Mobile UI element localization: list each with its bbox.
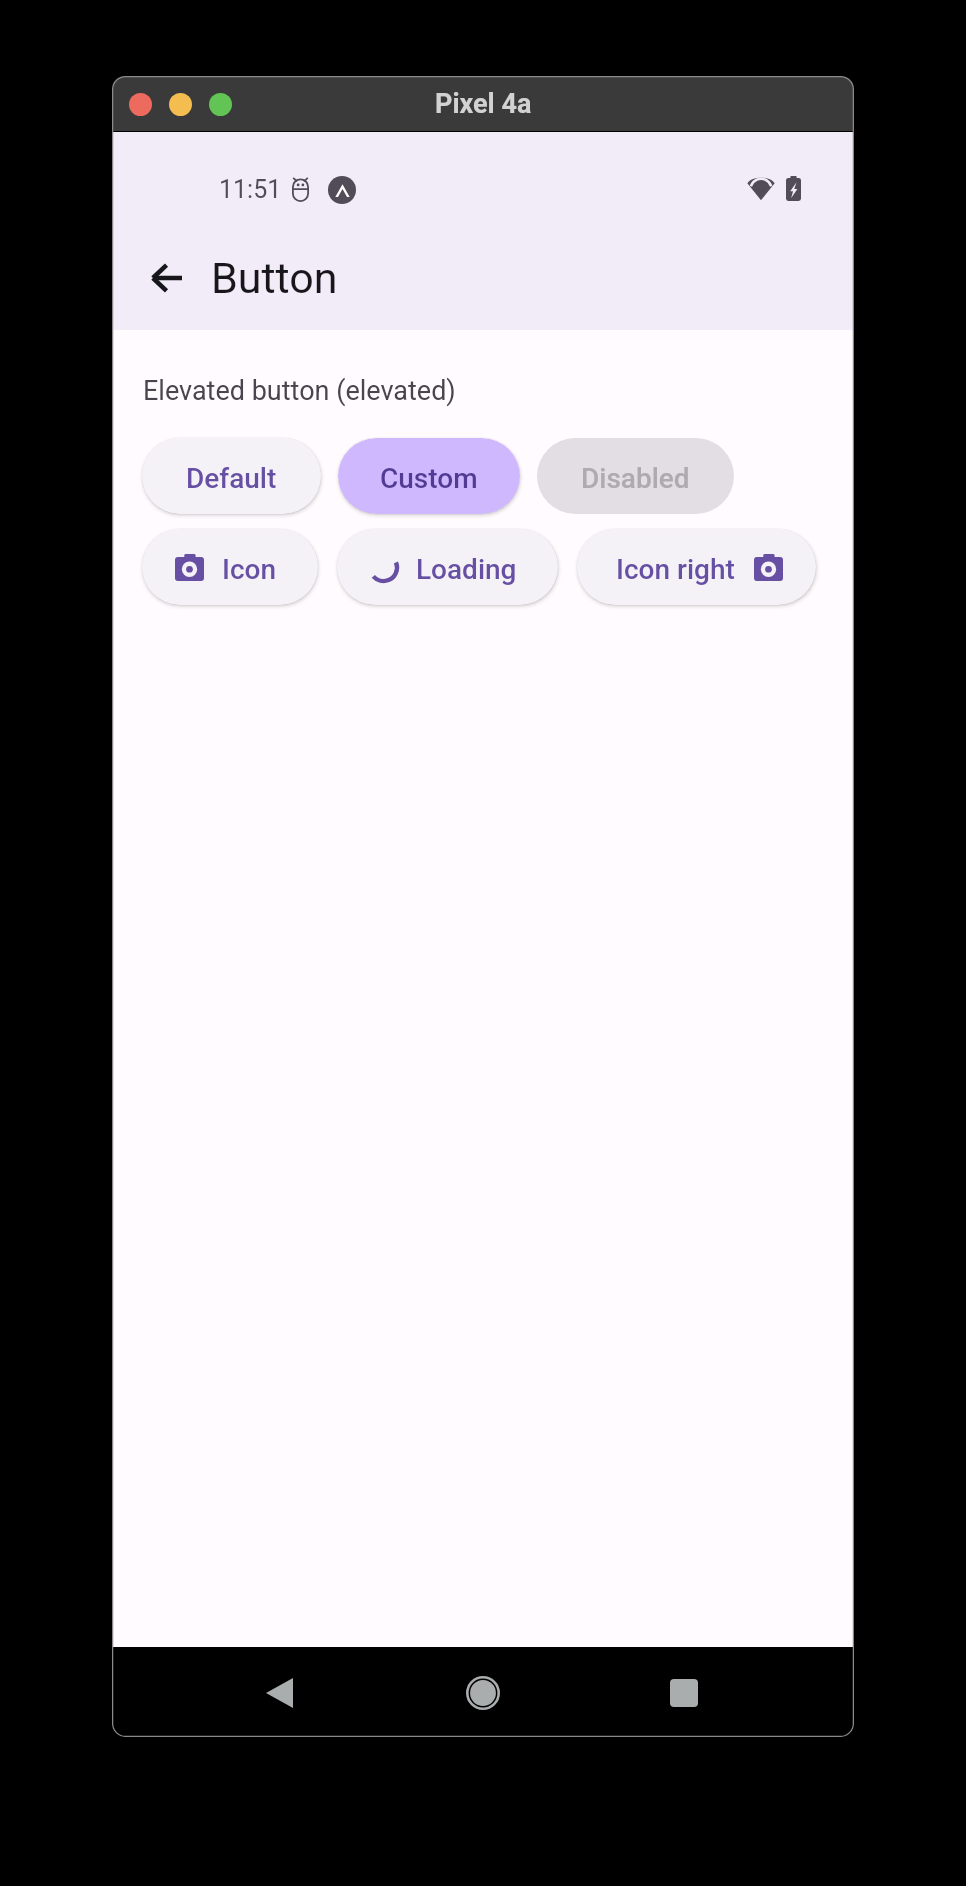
staticText: Loading <box>416 553 517 586</box>
button[interactable]: Disabled <box>537 438 734 514</box>
button[interactable]: Maximise <box>209 93 232 116</box>
staticText: Icon <box>222 553 277 586</box>
staticText: Default <box>186 462 277 495</box>
button[interactable]: Custom <box>338 438 520 514</box>
staticText: Button <box>211 253 338 303</box>
button[interactable]: Back <box>259 1673 299 1713</box>
staticText: Custom <box>380 462 478 495</box>
staticText: Icon right <box>616 553 735 586</box>
staticText: 11:51 <box>219 175 282 204</box>
button[interactable]: Loading <box>337 529 558 605</box>
staticText: Pixel 4a <box>435 88 532 120</box>
button[interactable]: Icon right <box>577 529 816 605</box>
button[interactable]: Minimise <box>169 93 192 116</box>
button[interactable]: Home <box>463 1673 503 1713</box>
staticText: Elevated button (elevated) <box>143 375 456 407</box>
button[interactable]: Recent apps <box>664 1673 704 1713</box>
staticText: Disabled <box>581 462 690 495</box>
button[interactable]: Close <box>129 93 152 116</box>
button[interactable]: Default <box>142 438 321 514</box>
button[interactable]: Navigate up <box>133 245 199 311</box>
button[interactable]: Icon <box>142 529 318 605</box>
